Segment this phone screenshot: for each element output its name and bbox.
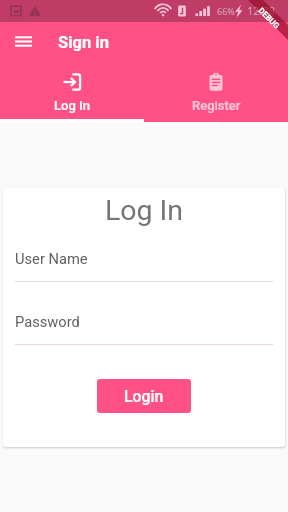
button[interactable]: Login bbox=[97, 379, 191, 413]
staticText: DEBUG bbox=[257, 6, 281, 31]
button[interactable]: Register bbox=[144, 62, 288, 122]
staticText: Password bbox=[15, 313, 80, 330]
staticText: Log In bbox=[54, 98, 90, 113]
button[interactable]: Open navigation drawer bbox=[6, 27, 36, 57]
staticText: Login bbox=[124, 387, 164, 406]
button[interactable]: Log In bbox=[0, 62, 144, 122]
staticText: 12:38 bbox=[247, 3, 276, 18]
staticText: 66% bbox=[217, 5, 235, 17]
staticText: User Name bbox=[15, 250, 88, 267]
staticText: Log In bbox=[3, 194, 285, 227]
staticText: Sign in bbox=[58, 33, 109, 52]
staticText: Register bbox=[192, 98, 241, 113]
